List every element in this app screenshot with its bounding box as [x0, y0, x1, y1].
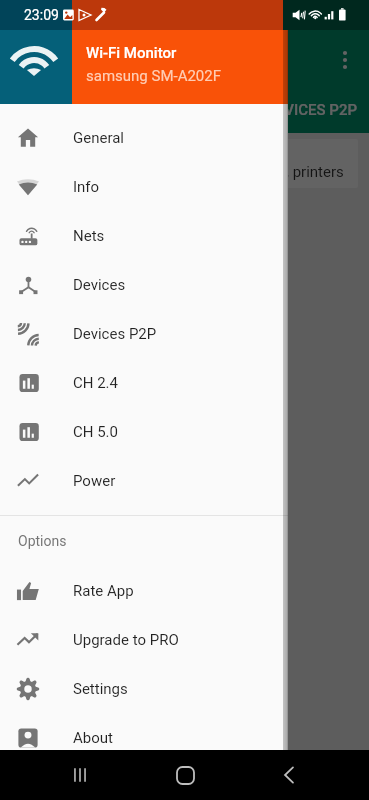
staticText: Settings [73, 680, 128, 698]
button[interactable]: Recents [56, 751, 104, 799]
staticText: About [73, 729, 113, 747]
button[interactable]: Nets [0, 211, 288, 260]
staticText: 23:09 [24, 7, 59, 23]
button[interactable]: Home [161, 751, 209, 799]
staticText: Upgrade to PRO [73, 631, 179, 649]
button[interactable]: More options [325, 40, 365, 80]
button[interactable]: Rate App [0, 566, 288, 615]
staticText: General [73, 129, 125, 147]
staticText: Search for phones, tablets, printers [112, 163, 344, 181]
button[interactable]: CH 2.4 [0, 358, 288, 407]
staticText: Power [73, 472, 116, 490]
staticText: Options [18, 533, 67, 549]
button[interactable]: Devices P2P [0, 309, 288, 358]
staticText: CH 2.4 [73, 374, 118, 392]
staticText: Wi-Fi Monitor [86, 44, 177, 62]
staticText: DEVICES P2P [266, 101, 358, 119]
button[interactable]: Back [265, 751, 313, 799]
staticText: Devices P2P [73, 325, 157, 343]
staticText: samsung SM-A202F [86, 67, 222, 85]
button[interactable]: Devices [0, 260, 288, 309]
button[interactable]: Upgrade to PRO [0, 615, 288, 664]
button[interactable]: General [0, 113, 288, 162]
button[interactable]: Wi-Fi Direct [8, 139, 358, 188]
staticText: Devices [73, 276, 126, 294]
button[interactable]: Info [0, 162, 288, 211]
button[interactable]: Settings [0, 664, 288, 713]
button[interactable]: Power [0, 456, 288, 505]
staticText: Rate App [73, 582, 134, 600]
button[interactable]: CH 5.0 [0, 407, 288, 456]
staticText: Wi-Fi Direct [24, 144, 102, 162]
staticText: Nets [73, 227, 105, 245]
staticText: CH 5.0 [73, 423, 118, 441]
staticText: Info [73, 178, 100, 196]
button[interactable]: About [0, 713, 288, 762]
